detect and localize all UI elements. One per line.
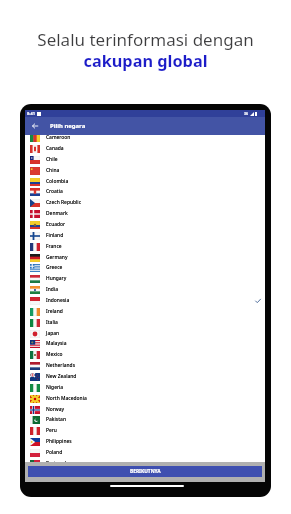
staticText: Netherlands	[46, 362, 76, 369]
staticText: Poland	[46, 449, 63, 456]
staticText: Selalu terinformasi dengan	[37, 28, 254, 51]
staticText: India	[46, 286, 58, 293]
button[interactable]: Back	[25, 117, 44, 135]
staticText: India	[46, 286, 58, 293]
staticText: Czech Republic	[46, 199, 82, 206]
button[interactable]: Czech Republic	[25, 197, 265, 208]
staticText: New Zealand	[46, 373, 77, 380]
staticText: Peru	[46, 427, 57, 434]
staticText: North Macedonia	[46, 395, 87, 402]
staticText: Norway	[46, 406, 65, 413]
staticText: Chile	[46, 156, 58, 163]
staticText: BERIKUTNYA	[130, 468, 161, 475]
staticText: Ecuador	[46, 221, 66, 228]
button[interactable]: Netherlands	[25, 360, 265, 371]
button[interactable]: Colombia	[25, 176, 265, 187]
button[interactable]: Canada	[25, 143, 265, 154]
button[interactable]: India	[25, 284, 265, 295]
staticText: Indonesia	[46, 297, 70, 304]
button[interactable]: Philippines	[25, 436, 265, 447]
button[interactable]: Denmark	[25, 208, 265, 219]
button[interactable]: Italia	[25, 317, 265, 328]
button[interactable]: Chile	[25, 154, 265, 165]
staticText: Finland	[46, 232, 64, 239]
staticText: Chile	[46, 156, 58, 163]
staticText: Portugal	[46, 460, 67, 462]
staticText: Pilih negara	[50, 122, 86, 130]
staticText: Cameroon	[46, 135, 71, 141]
button[interactable]: Germany	[25, 252, 265, 263]
button[interactable]: Finland	[25, 230, 265, 241]
staticText: Japan	[46, 330, 60, 337]
button[interactable]: Poland	[25, 447, 265, 458]
staticText: Netherlands	[46, 362, 76, 369]
staticText: France	[46, 243, 62, 250]
staticText: 8:41	[27, 111, 35, 116]
staticText: Germany	[46, 254, 68, 261]
button[interactable]: Pakistan	[25, 414, 265, 425]
button[interactable]: Mexico	[25, 349, 265, 360]
button[interactable]: Croatia	[25, 186, 265, 197]
button[interactable]: Nigeria	[25, 382, 265, 393]
staticText: Finland	[46, 232, 64, 239]
staticText: Italia	[46, 319, 58, 326]
button[interactable]: Norway	[25, 404, 265, 415]
staticText: Greece	[46, 264, 63, 271]
staticText: Hungary	[46, 275, 67, 282]
staticText: Ireland	[46, 308, 63, 315]
staticText: Ireland	[46, 308, 63, 315]
staticText: Ecuador	[46, 221, 66, 228]
staticText: China	[46, 167, 60, 174]
staticText: Peru	[46, 427, 57, 434]
staticText: Denmark	[46, 210, 68, 217]
button[interactable]: North Macedonia	[25, 393, 265, 404]
button[interactable]: France	[25, 241, 265, 252]
staticText: France	[46, 243, 62, 250]
staticText: Japan	[46, 330, 60, 337]
button[interactable]: BERIKUTNYA	[28, 466, 262, 477]
staticText: Italia	[46, 319, 58, 326]
staticText: China	[46, 167, 60, 174]
button[interactable]: Malaysia	[25, 338, 265, 349]
staticText: Croatia	[46, 188, 63, 195]
staticText: Indonesia	[46, 297, 70, 304]
staticText: Denmark	[46, 210, 68, 217]
staticText: New Zealand	[46, 373, 77, 380]
staticText: Czech Republic	[46, 199, 82, 206]
staticText: Canada	[46, 145, 64, 152]
staticText: cakupan global	[83, 50, 208, 72]
staticText: Canada	[46, 145, 64, 152]
staticText: Greece	[46, 264, 63, 271]
staticText: Pakistan	[46, 416, 66, 423]
button[interactable]: Portugal	[25, 458, 265, 462]
staticText: Pakistan	[46, 416, 66, 423]
staticText: Philippines	[46, 438, 72, 445]
staticText: Portugal	[46, 460, 67, 462]
button[interactable]: China	[25, 165, 265, 176]
staticText: Cameroon	[46, 135, 71, 141]
staticText: Croatia	[46, 188, 63, 195]
staticText: Hungary	[46, 275, 67, 282]
button[interactable]: Hungary	[25, 273, 265, 284]
button[interactable]: Ecuador	[25, 219, 265, 230]
button[interactable]: Ireland	[25, 306, 265, 317]
staticText: Mexico	[46, 351, 63, 358]
staticText: 36	[244, 111, 249, 116]
button[interactable]: New Zealand	[25, 371, 265, 382]
button[interactable]: Cameroon	[25, 135, 265, 143]
staticText: Nigeria	[46, 384, 64, 391]
button[interactable]: Indonesia	[25, 295, 265, 306]
staticText: North Macedonia	[46, 395, 87, 402]
staticText: Germany	[46, 254, 68, 261]
staticText: Malaysia	[46, 340, 67, 347]
button[interactable]: Japan	[25, 328, 265, 339]
staticText: Nigeria	[46, 384, 64, 391]
staticText: Philippines	[46, 438, 72, 445]
button[interactable]: Greece	[25, 262, 265, 273]
staticText: Mexico	[46, 351, 63, 358]
staticText: Poland	[46, 449, 63, 456]
staticText: Malaysia	[46, 340, 67, 347]
staticText: Colombia	[46, 178, 69, 185]
staticText: Colombia	[46, 178, 69, 185]
button[interactable]: Peru	[25, 425, 265, 436]
